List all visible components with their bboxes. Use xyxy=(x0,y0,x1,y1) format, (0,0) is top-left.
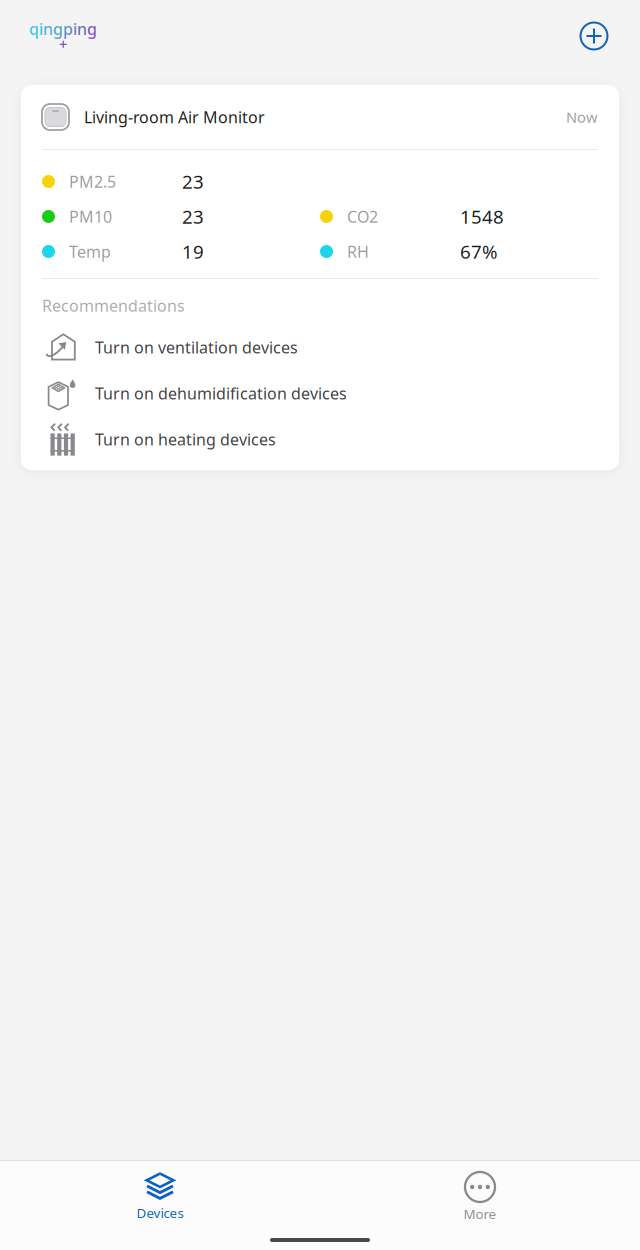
staticText: More xyxy=(463,1205,496,1223)
staticText: 1548 xyxy=(460,204,504,229)
staticText: + xyxy=(59,34,67,54)
button[interactable]: Devices xyxy=(0,1172,320,1226)
button[interactable]: Add device xyxy=(566,10,622,62)
staticText: PM10 xyxy=(69,206,112,227)
staticText: Turn on dehumidification devices xyxy=(95,383,347,404)
staticText: Devices xyxy=(136,1204,183,1222)
staticText: 23 xyxy=(182,204,204,229)
staticText: Living-room Air Monitor xyxy=(84,106,265,128)
staticText: Temp xyxy=(69,241,111,262)
staticText: PM2.5 xyxy=(69,171,116,192)
staticText: i xyxy=(73,18,77,39)
staticText: n xyxy=(77,18,87,39)
button[interactable]: Turn on ventilation devices xyxy=(42,324,598,370)
staticText: g xyxy=(87,18,97,39)
staticText: 19 xyxy=(182,239,204,264)
staticText: Now xyxy=(566,107,598,127)
staticText: 23 xyxy=(182,169,204,194)
staticText: g xyxy=(53,18,63,39)
button[interactable]: More xyxy=(320,1172,640,1226)
staticText: Turn on heating devices xyxy=(95,429,276,450)
staticText: i xyxy=(39,18,43,39)
staticText: 67% xyxy=(460,239,498,264)
staticText: p xyxy=(63,18,73,39)
staticText: RH xyxy=(347,241,369,262)
staticText: n xyxy=(43,18,53,39)
button[interactable]: Turn on heating devices xyxy=(42,416,598,462)
staticText: q xyxy=(29,18,39,39)
staticText: Turn on ventilation devices xyxy=(95,337,298,358)
button[interactable]: Turn on dehumidification devices xyxy=(42,370,598,416)
staticText: CO2 xyxy=(347,206,378,227)
staticText: Recommendations xyxy=(42,295,185,316)
